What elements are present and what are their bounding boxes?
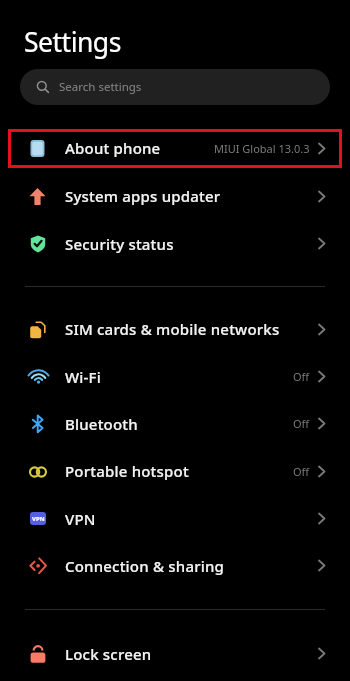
button[interactable]: VPN (0, 495, 350, 542)
staticText: Off (293, 416, 310, 431)
button[interactable]: Connection & sharing (0, 542, 350, 589)
staticText: Off (293, 464, 310, 479)
button[interactable]: About phone (0, 124, 350, 172)
staticText: VPN (65, 509, 96, 529)
staticText: MIUI Global 13.0.3 (214, 141, 310, 156)
staticText: Security status (65, 234, 174, 254)
staticText: Portable hotspot (65, 461, 189, 481)
staticText: Connection & sharing (65, 556, 225, 576)
button[interactable]: Security status (0, 220, 350, 267)
staticText: Settings (24, 24, 121, 60)
button[interactable]: Wi-Fi (0, 353, 350, 400)
button[interactable]: Lock screen (0, 630, 350, 677)
staticText: About phone (65, 138, 161, 158)
button[interactable]: Search settings (20, 69, 330, 105)
staticText: SIM cards & mobile networks (65, 319, 280, 339)
staticText: Bluetooth (65, 414, 138, 434)
staticText: VPN (32, 515, 45, 523)
button[interactable]: SIM cards & mobile networks (0, 305, 350, 353)
staticText: System apps updater (65, 186, 221, 206)
staticText: Search settings (59, 79, 142, 95)
staticText: Lock screen (65, 644, 152, 664)
button[interactable]: Bluetooth (0, 400, 350, 447)
staticText: Wi-Fi (65, 367, 101, 387)
button[interactable]: System apps updater (0, 172, 350, 220)
staticText: Off (293, 369, 310, 384)
button[interactable]: Portable hotspot (0, 447, 350, 495)
